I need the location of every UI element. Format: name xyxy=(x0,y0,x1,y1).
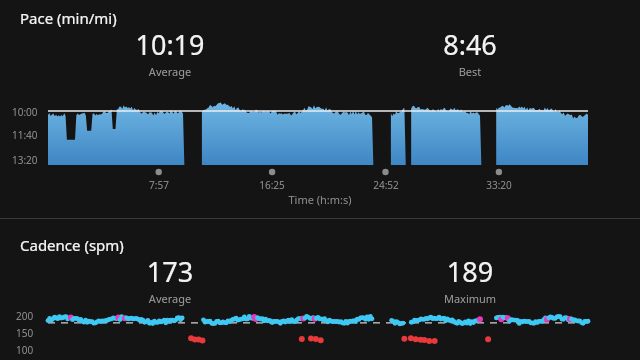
staticText: 33:20 xyxy=(477,178,521,192)
staticText: 100 xyxy=(16,343,34,357)
staticText: 13:20 xyxy=(12,153,38,167)
staticText: Cadence (spm) xyxy=(20,235,124,255)
staticText: 24:52 xyxy=(364,178,408,192)
button[interactable]: 189 xyxy=(410,253,530,306)
staticText: Average xyxy=(110,64,230,79)
staticText: 189 xyxy=(410,253,530,290)
staticText: 8:46 xyxy=(410,26,530,63)
staticText: Best xyxy=(410,64,530,79)
staticText: Pace (min/mi) xyxy=(20,8,117,28)
staticText: 10:00 xyxy=(12,105,38,119)
staticText: Average xyxy=(110,291,230,306)
staticText: Time (h:m:s) xyxy=(0,192,640,207)
staticText: 16:25 xyxy=(250,178,294,192)
button[interactable]: 10:19 xyxy=(110,26,230,79)
staticText: 200 xyxy=(16,309,34,323)
staticText: 150 xyxy=(16,326,34,340)
staticText: 10:19 xyxy=(110,26,230,63)
button[interactable]: 173 xyxy=(110,253,230,306)
button[interactable]: 8:46 xyxy=(410,26,530,79)
button[interactable]: Pace (min/mi) xyxy=(0,0,640,218)
staticText: 173 xyxy=(110,253,230,290)
button[interactable]: Cadence (spm) xyxy=(0,219,640,360)
staticText: 7:57 xyxy=(137,178,181,192)
staticText: Maximum xyxy=(410,291,530,306)
staticText: 11:40 xyxy=(12,128,38,142)
